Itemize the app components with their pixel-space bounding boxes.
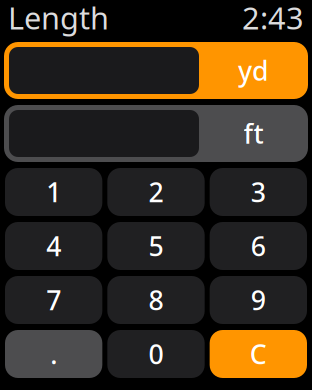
button[interactable]: 8 [107, 276, 205, 324]
button[interactable]: ft [4, 105, 308, 162]
button[interactable]: 9 [210, 276, 307, 324]
staticText: 3 [251, 174, 266, 210]
staticText: . [50, 336, 57, 372]
staticText: 0 [148, 336, 163, 372]
button[interactable]: yd [4, 42, 308, 99]
staticText: Length [8, 0, 109, 38]
button[interactable]: 1 [5, 168, 102, 216]
button[interactable]: 3 [210, 168, 307, 216]
staticText: 2 [148, 174, 163, 210]
staticText: 6 [251, 228, 266, 264]
button[interactable]: 6 [210, 222, 307, 270]
button[interactable]: 0 [107, 330, 205, 378]
staticText: yd [238, 53, 269, 88]
staticText: 9 [251, 282, 266, 318]
button[interactable]: 2 [107, 168, 205, 216]
staticText: 1 [46, 174, 61, 210]
button[interactable]: 5 [107, 222, 205, 270]
staticText: C [250, 336, 267, 372]
button[interactable]: C [210, 330, 307, 378]
staticText: 7 [46, 282, 61, 318]
button[interactable]: 7 [5, 276, 102, 324]
button[interactable]: 4 [5, 222, 102, 270]
button[interactable]: . [5, 330, 102, 378]
staticText: ft [243, 116, 263, 151]
staticText: 8 [148, 282, 163, 318]
staticText: 4 [46, 228, 61, 264]
staticText: 2:43 [242, 0, 304, 38]
staticText: 5 [148, 228, 163, 264]
